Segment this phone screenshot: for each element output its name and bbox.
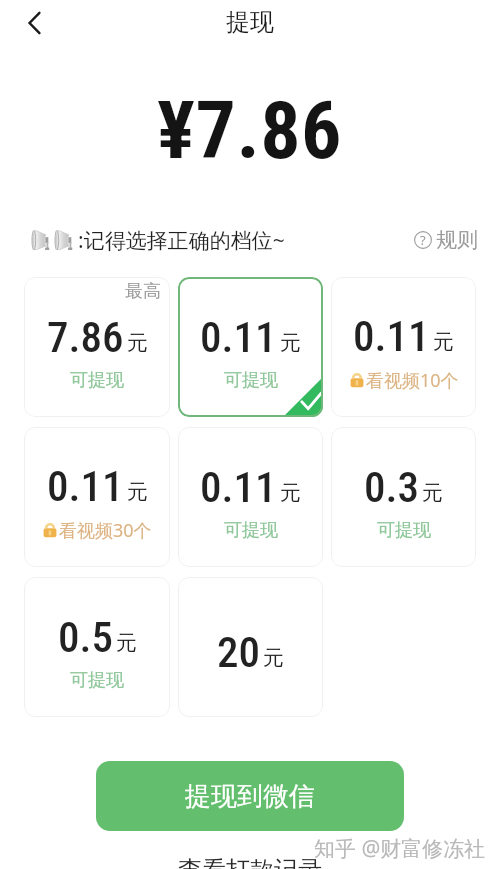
staticText: 20 bbox=[217, 627, 260, 677]
staticText: ¥7.86 bbox=[157, 84, 343, 178]
button[interactable]: 0.11 bbox=[178, 427, 323, 567]
staticText: 最高 bbox=[125, 280, 161, 303]
button[interactable]: 0.11 bbox=[24, 427, 170, 567]
staticText: 看视频10个 bbox=[366, 368, 459, 393]
button[interactable]: 查看打款记录 bbox=[178, 855, 322, 869]
staticText: 元 bbox=[280, 330, 301, 356]
staticText: 元 bbox=[263, 645, 284, 671]
staticText: 可提现 bbox=[70, 669, 124, 692]
staticText: 提现 bbox=[226, 7, 274, 37]
staticText: 看视频30个 bbox=[59, 518, 152, 543]
staticText: 元 bbox=[280, 480, 301, 506]
button[interactable]: 提现到微信 bbox=[96, 761, 404, 831]
button[interactable]: 最高 bbox=[24, 277, 170, 417]
staticText: 可提现 bbox=[70, 369, 124, 392]
staticText: 0.11 bbox=[200, 312, 277, 362]
button[interactable]: 0.3 bbox=[331, 427, 476, 567]
staticText: 0.3 bbox=[364, 462, 419, 512]
staticText: :记得选择正确的档位~ bbox=[78, 226, 285, 255]
staticText: 0.11 bbox=[353, 311, 430, 361]
staticText: 可提现 bbox=[224, 369, 278, 392]
button[interactable]: 0.5 bbox=[24, 577, 170, 717]
button[interactable]: Back bbox=[11, 2, 53, 44]
staticText: 元 bbox=[127, 479, 148, 505]
staticText: 元 bbox=[422, 480, 443, 506]
staticText: 规则 bbox=[436, 227, 478, 253]
staticText: 可提现 bbox=[224, 519, 278, 542]
staticText: 7.86 bbox=[47, 312, 124, 362]
staticText: 0.11 bbox=[200, 462, 277, 512]
staticText: 提现到微信 bbox=[185, 780, 315, 813]
button[interactable]: 0.11 bbox=[178, 277, 323, 417]
staticText: 0.11 bbox=[47, 461, 124, 511]
staticText: 知乎 @财富修冻社 bbox=[314, 834, 486, 863]
button[interactable]: 20 bbox=[178, 577, 323, 717]
staticText: 0.5 bbox=[58, 612, 113, 662]
staticText: 可提现 bbox=[377, 519, 431, 542]
staticText: 元 bbox=[127, 330, 148, 356]
button[interactable]: ? bbox=[414, 227, 478, 253]
staticText: 元 bbox=[116, 630, 137, 656]
staticText: 元 bbox=[433, 329, 454, 355]
button[interactable]: 0.11 bbox=[331, 277, 476, 417]
staticText: ? bbox=[420, 231, 426, 249]
